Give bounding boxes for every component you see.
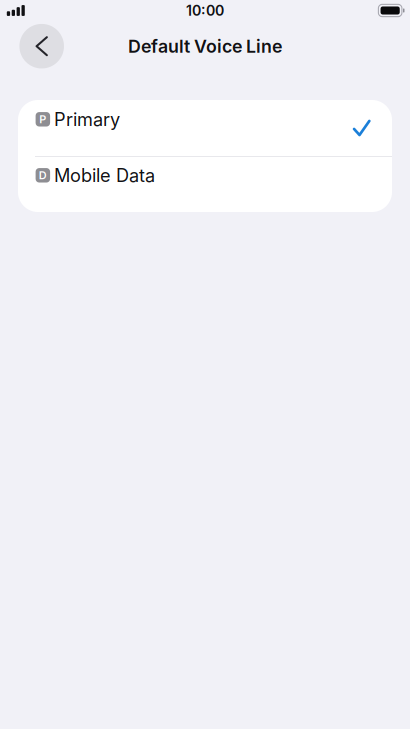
button[interactable]: P bbox=[18, 100, 392, 156]
staticText: P bbox=[39, 113, 46, 126]
staticText: Mobile Data bbox=[54, 164, 155, 186]
staticText: 10:00 bbox=[186, 2, 224, 19]
staticText: Default Voice Line bbox=[128, 35, 282, 57]
button[interactable]: Back bbox=[19, 24, 64, 68]
staticText: D bbox=[39, 169, 47, 182]
staticText: Primary bbox=[54, 108, 120, 130]
button[interactable]: D bbox=[18, 156, 392, 212]
